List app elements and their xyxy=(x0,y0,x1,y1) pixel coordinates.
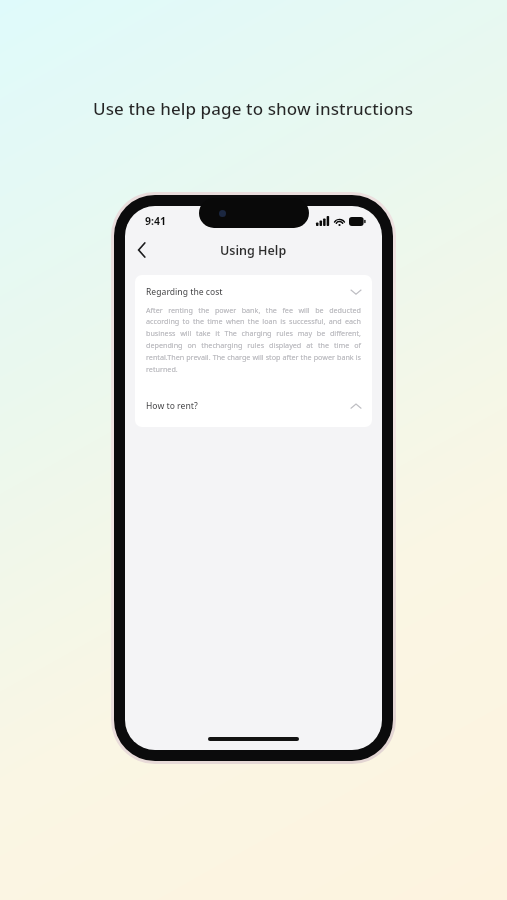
staticText: How to rent? xyxy=(146,400,198,412)
staticText: Regarding the cost xyxy=(146,286,223,298)
button[interactable]: Regarding the cost xyxy=(135,275,372,305)
staticText: Using Help xyxy=(220,242,287,259)
staticText: After renting the power bank, the fee wi… xyxy=(146,305,361,375)
staticText: Use the help page to show instructions xyxy=(93,97,414,120)
button[interactable]: How to rent? xyxy=(135,389,372,419)
staticText: 9:41 xyxy=(145,214,166,228)
button[interactable]: Back xyxy=(125,234,159,266)
